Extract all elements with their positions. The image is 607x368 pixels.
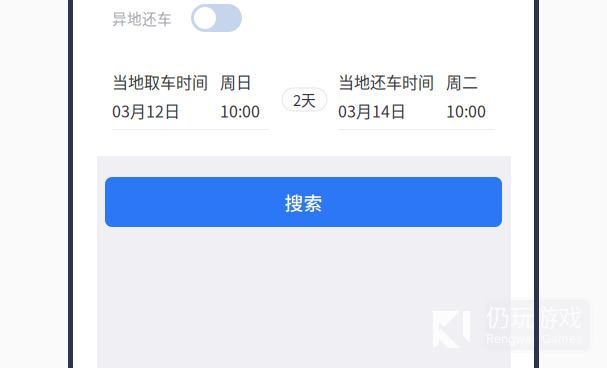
button[interactable]: 搜索 — [105, 177, 502, 227]
staticText: 10:00 — [220, 99, 260, 122]
staticText: 搜索 — [284, 188, 322, 215]
staticText: 当地取车时间 — [112, 70, 208, 93]
staticText: 2天 — [293, 89, 316, 110]
staticText: 10:00 — [446, 99, 486, 122]
staticText: 周日 — [220, 70, 252, 93]
staticText: Rengwan Games — [486, 332, 582, 346]
staticText: 异地还车 — [112, 7, 172, 29]
button[interactable]: 2天 — [282, 88, 327, 111]
staticText: 03月12日 — [112, 99, 180, 122]
button[interactable]: 当地还车时间 — [338, 70, 495, 130]
button[interactable]: 异地还车 — [112, 4, 242, 32]
button[interactable]: 当地取车时间 — [112, 70, 269, 130]
staticText: 03月14日 — [338, 99, 406, 122]
staticText: 周二 — [446, 70, 478, 93]
staticText: 当地还车时间 — [338, 70, 434, 93]
staticText: 仍玩游戏 — [486, 299, 582, 333]
